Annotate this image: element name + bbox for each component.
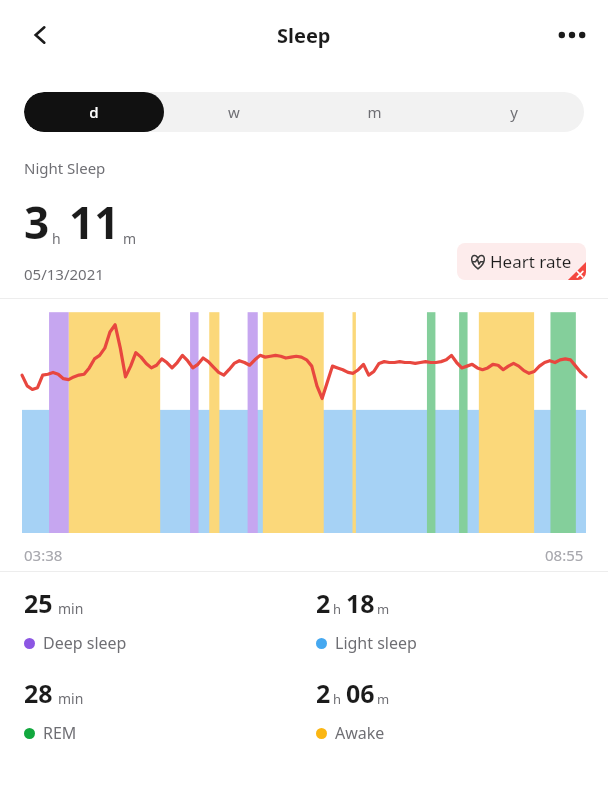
staticText: 08:55	[545, 545, 584, 565]
staticText: d	[89, 102, 99, 122]
staticText: Awake	[335, 722, 385, 744]
staticText: m	[377, 690, 390, 708]
staticText: Night Sleep	[24, 158, 106, 178]
staticText: 18	[346, 586, 375, 620]
staticText: 2	[316, 586, 331, 620]
staticText: Sleep	[277, 22, 331, 49]
staticText: 06	[346, 676, 375, 710]
staticText: 03:38	[24, 545, 63, 565]
staticText: REM	[43, 722, 77, 744]
button[interactable]: Heart rate	[457, 243, 586, 280]
staticText: Light sleep	[335, 632, 417, 654]
staticText: 25	[24, 586, 53, 620]
staticText: Deep sleep	[43, 632, 127, 654]
staticText: h	[333, 690, 342, 708]
button[interactable]: d	[24, 92, 164, 132]
button[interactable]: m	[304, 92, 444, 132]
button[interactable]: More options	[548, 11, 596, 59]
staticText: m	[377, 600, 390, 618]
staticText: 3	[24, 192, 50, 252]
staticText: h	[52, 229, 61, 248]
staticText: Heart rate	[490, 250, 572, 273]
staticText: min	[58, 599, 84, 618]
button[interactable]: Back	[16, 11, 64, 59]
staticText: 2	[316, 676, 331, 710]
staticText: w	[228, 102, 240, 122]
staticText: h	[333, 600, 342, 618]
button[interactable]: w	[164, 92, 304, 132]
staticText: 11	[69, 192, 120, 252]
button[interactable]: y	[444, 92, 584, 132]
staticText: m	[123, 229, 137, 248]
staticText: 28	[24, 676, 53, 710]
staticText: m	[367, 102, 382, 122]
staticText: 05/13/2021	[24, 264, 104, 284]
staticText: y	[510, 102, 518, 122]
staticText: min	[58, 689, 84, 708]
